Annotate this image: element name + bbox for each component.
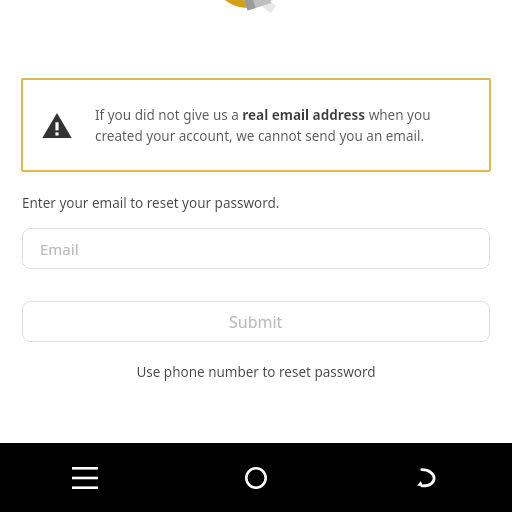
- staticText: If you did not give us a real email addr…: [95, 106, 477, 145]
- button[interactable]: Back: [341, 443, 512, 512]
- button[interactable]: Submit: [22, 301, 490, 342]
- staticText: Email: [40, 239, 79, 259]
- staticText: Submit: [229, 311, 283, 333]
- button[interactable]: Use phone number to reset password: [126, 359, 386, 385]
- button[interactable]: Home: [170, 443, 341, 512]
- staticText: Enter your email to reset your password.: [22, 194, 280, 212]
- button[interactable]: Menu: [0, 443, 170, 512]
- button[interactable]: Email: [22, 228, 490, 269]
- staticText: Use phone number to reset password: [136, 363, 376, 381]
